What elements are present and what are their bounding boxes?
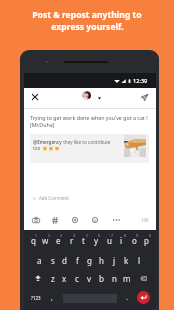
staticText: 7 [111, 233, 114, 238]
staticText: k [124, 255, 129, 266]
button[interactable]: a [33, 253, 46, 267]
staticText: 5 [86, 233, 89, 238]
button[interactable]: Backspace [137, 271, 150, 285]
staticText: Trying to get work done when you've got … [30, 114, 148, 121]
button[interactable]: v [83, 271, 96, 285]
staticText: i [120, 235, 123, 246]
staticText: y [94, 235, 99, 246]
staticText: 2 [48, 233, 51, 238]
button[interactable]: p [140, 233, 153, 247]
staticText: z [51, 273, 55, 284]
button[interactable]: y [90, 233, 103, 247]
staticText: l [138, 255, 141, 266]
staticText: v [87, 273, 92, 284]
button[interactable]: l [133, 253, 146, 267]
staticText: f [76, 255, 79, 266]
button[interactable]: h [95, 253, 108, 267]
button[interactable]: Account [82, 91, 91, 100]
staticText: 0 [149, 233, 152, 238]
staticText: e [56, 235, 61, 246]
staticText: 6 [98, 233, 101, 238]
staticText: [Mr.Duha] [30, 121, 55, 128]
button[interactable]: u [103, 233, 116, 247]
staticText: p [144, 235, 149, 246]
button[interactable]: Close [29, 91, 41, 103]
button[interactable]: b [95, 271, 108, 285]
staticText: q [31, 235, 36, 246]
button[interactable]: q [27, 233, 40, 247]
staticText: h [99, 255, 104, 266]
staticText: , [51, 293, 53, 303]
staticText: 9 [136, 233, 139, 238]
button[interactable]: f [71, 253, 84, 267]
staticText: 4 [73, 233, 76, 238]
staticText: 140 [141, 217, 149, 223]
staticText: s [51, 255, 55, 266]
button[interactable]: o [128, 233, 141, 247]
button[interactable]: @Emergency [30, 134, 149, 163]
button[interactable]: Enter [137, 291, 150, 304]
staticText: c [75, 273, 79, 284]
button[interactable]: ?123 [29, 291, 43, 305]
staticText: w [42, 235, 49, 246]
button[interactable]: n [108, 271, 121, 285]
staticText: t [82, 235, 85, 246]
staticText: express yourself. [51, 21, 124, 33]
staticText: . [126, 293, 128, 303]
button[interactable]: More [110, 214, 122, 226]
staticText: x [62, 273, 67, 284]
staticText: d [62, 255, 67, 266]
staticText: ?123 [31, 295, 41, 301]
button[interactable]: z [46, 271, 59, 285]
button[interactable]: c [70, 271, 83, 285]
staticText: 12:39 [133, 77, 148, 85]
button[interactable]: g [83, 253, 96, 267]
button[interactable]: Hashtag [49, 214, 61, 226]
button[interactable]: d [58, 253, 71, 267]
staticText: u [107, 235, 112, 246]
staticText: j [113, 255, 116, 266]
staticText: 1 [35, 233, 38, 238]
staticText: @Emergency [33, 139, 62, 145]
staticText: o [132, 235, 137, 246]
button[interactable]: r [65, 233, 78, 247]
button[interactable]: w [39, 233, 52, 247]
button[interactable]: Camera [30, 214, 42, 226]
button[interactable]: m [120, 271, 133, 285]
button[interactable]: Send [138, 91, 150, 103]
button[interactable]: Mention [69, 214, 81, 226]
button[interactable]: s [46, 253, 59, 267]
staticText: Post & repost anything to [32, 9, 142, 21]
button[interactable]: Emoji [89, 214, 101, 226]
staticText: b [99, 273, 104, 284]
staticText: they like to contribute [62, 139, 111, 145]
staticText: 3 [60, 233, 63, 238]
button[interactable]: k [120, 253, 133, 267]
button[interactable]: x [58, 271, 71, 285]
staticText: r [70, 235, 74, 246]
staticText: g [87, 255, 92, 266]
staticText: a [37, 255, 42, 266]
staticText: 8 [124, 233, 127, 238]
button[interactable]: t [77, 233, 90, 247]
button[interactable]: Shift [31, 271, 44, 285]
staticText: m [123, 273, 131, 284]
button[interactable]: j [108, 253, 121, 267]
button[interactable]: Add Comment [33, 195, 69, 201]
button[interactable]: i [115, 233, 128, 247]
staticText: Add Comment [39, 195, 69, 201]
staticText: n [112, 273, 117, 284]
staticText: too [33, 145, 41, 151]
button[interactable]: e [52, 233, 65, 247]
button[interactable]: . [121, 291, 133, 305]
button[interactable]: , [46, 291, 58, 305]
